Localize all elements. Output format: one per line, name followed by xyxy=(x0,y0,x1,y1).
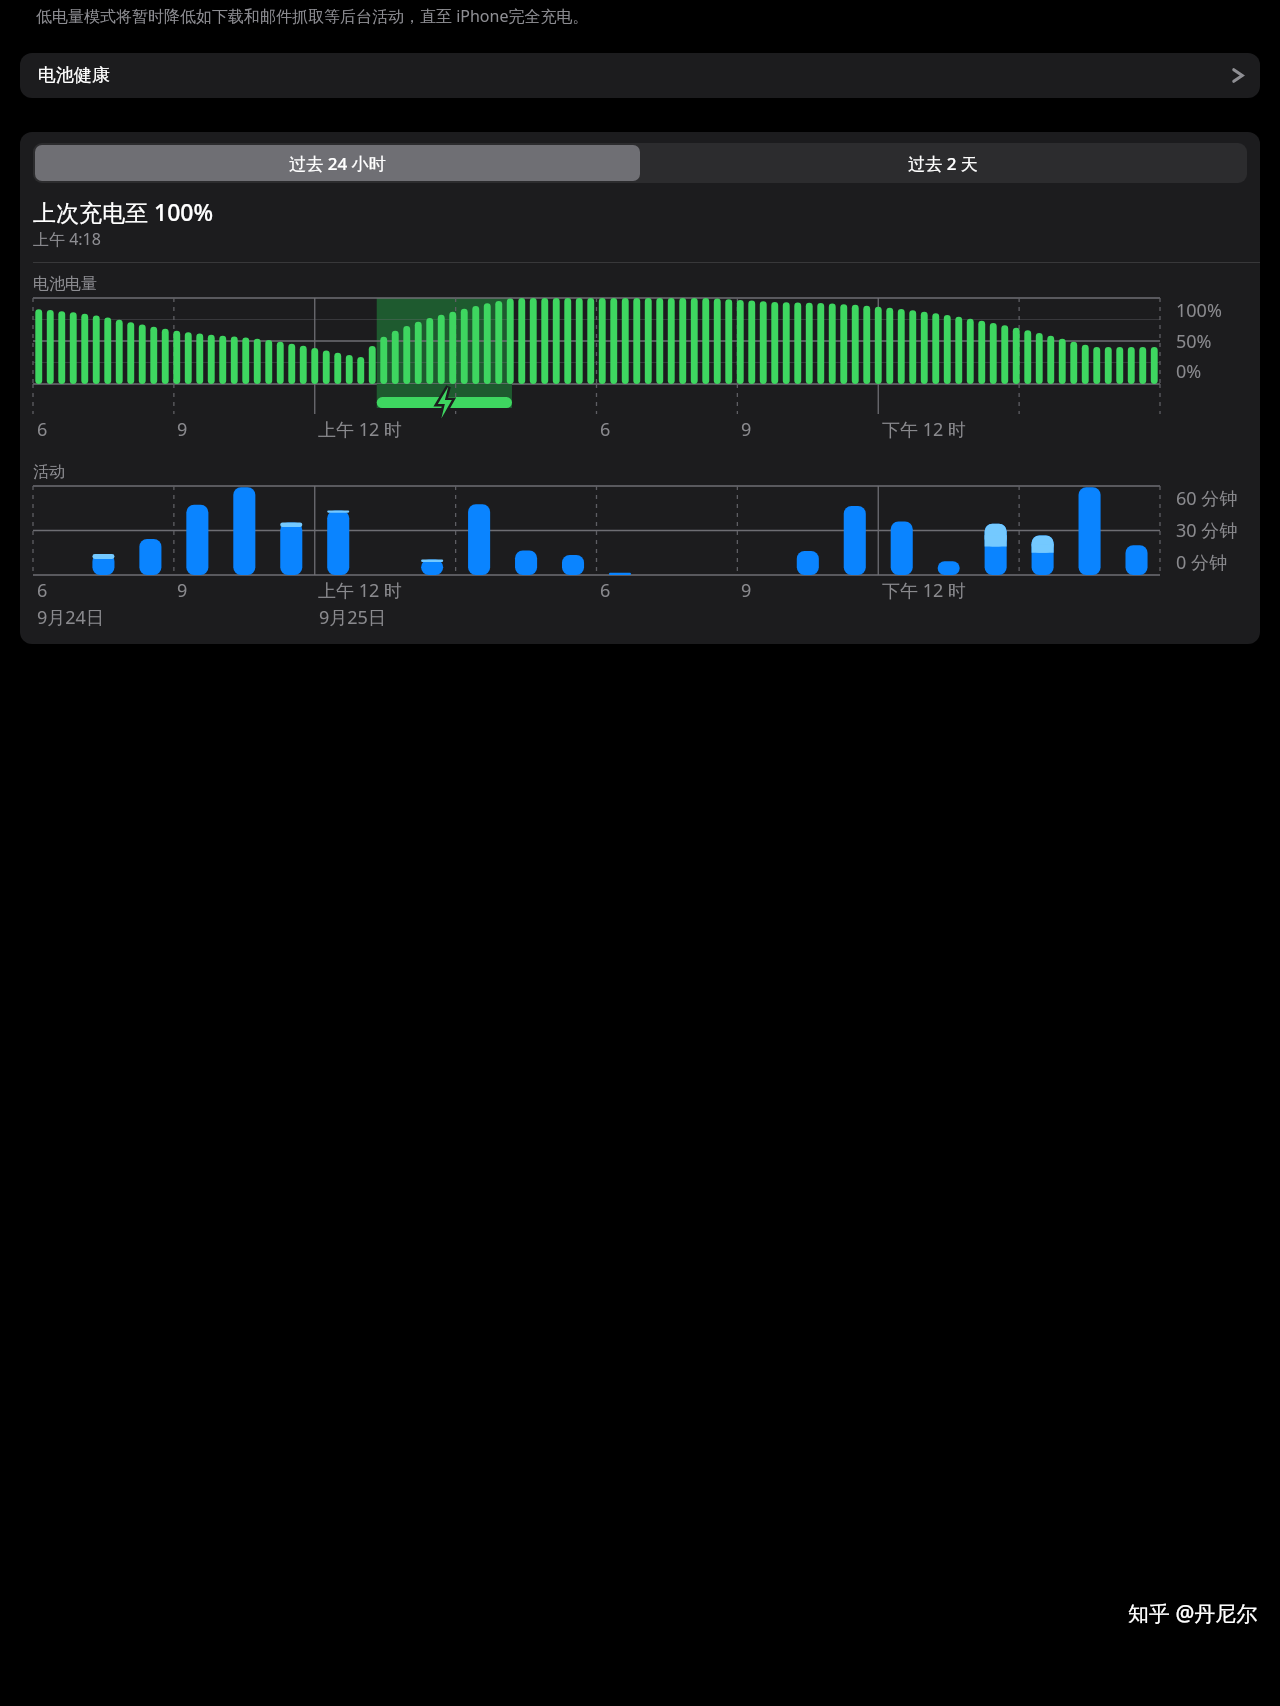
staticText: 6 xyxy=(600,417,611,442)
staticText: 6 xyxy=(600,578,611,603)
other: 电池健康详情 xyxy=(1229,61,1246,90)
staticText: 下午 12 时 xyxy=(882,417,966,442)
staticText: 上午 12 时 xyxy=(318,578,402,603)
staticText: 100% xyxy=(1176,298,1222,323)
staticText: 低电量模式将暂时降低如下载和邮件抓取等后台活动，直至 iPhone完全充电。 xyxy=(36,5,1246,27)
staticText: 9月25日 xyxy=(319,605,386,630)
staticText: 过去 24 小时 xyxy=(289,152,386,175)
button[interactable]: 电池健康 xyxy=(20,53,1260,98)
staticText: 知乎 @丹尼尔 xyxy=(1128,1599,1258,1628)
staticText: 6 xyxy=(37,417,48,442)
staticText: 50% xyxy=(1176,329,1212,354)
staticText: 9月24日 xyxy=(37,605,104,630)
staticText: 0 分钟 xyxy=(1176,550,1227,575)
staticText: 9 xyxy=(177,578,188,603)
staticText: 电池健康 xyxy=(38,64,110,87)
staticText: 30 分钟 xyxy=(1176,518,1238,543)
staticText: 过去 2 天 xyxy=(908,152,978,175)
staticText: 上次充电至 100% xyxy=(33,196,214,227)
staticText: 9 xyxy=(177,417,188,442)
staticText: 上午 4:18 xyxy=(33,228,101,250)
staticText: 0% xyxy=(1176,359,1202,384)
staticText: 6 xyxy=(37,578,48,603)
staticText: 下午 12 时 xyxy=(882,578,966,603)
staticText: 电池电量 xyxy=(33,274,97,294)
button[interactable]: 过去 2 天 xyxy=(640,145,1245,181)
button[interactable]: 过去 24 小时 xyxy=(35,145,640,181)
staticText: 60 分钟 xyxy=(1176,486,1238,511)
staticText: 活动 xyxy=(33,462,65,482)
staticText: 上午 12 时 xyxy=(318,417,402,442)
staticText: 9 xyxy=(741,578,752,603)
staticText: 9 xyxy=(741,417,752,442)
